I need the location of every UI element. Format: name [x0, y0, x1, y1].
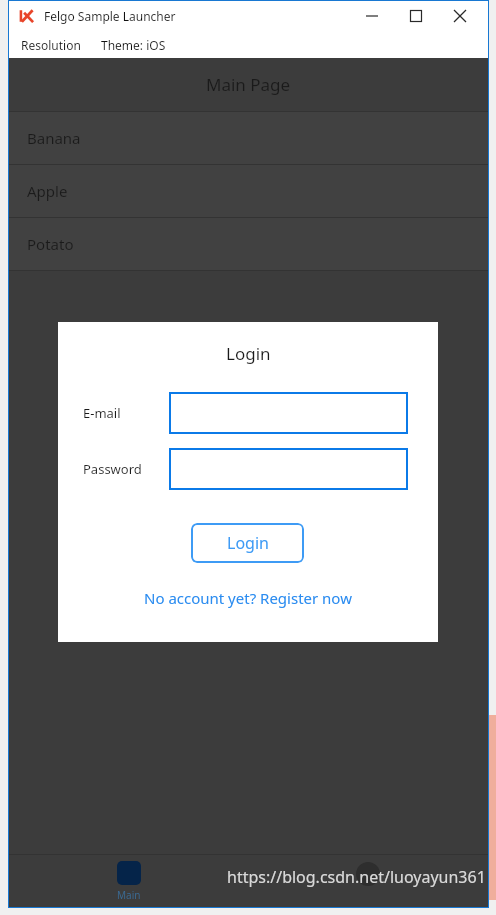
button[interactable]: Banana [9, 112, 488, 165]
staticText: Password [83, 460, 142, 478]
staticText: Banana [27, 128, 81, 148]
staticText: Login [226, 342, 271, 365]
button[interactable]: Maximize [394, 2, 438, 30]
staticText: Theme: iOS [101, 37, 166, 53]
staticText: Main [117, 888, 141, 902]
staticText: Felgo Sample Launcher [44, 8, 176, 24]
button[interactable]: Password input [169, 448, 408, 490]
staticText: Main Page [206, 73, 291, 96]
button[interactable]: Login [191, 523, 304, 563]
staticText: Potato [27, 234, 74, 254]
staticText: Apple [27, 181, 68, 201]
staticText: Login [227, 532, 269, 554]
button[interactable]: Main [9, 855, 248, 907]
button[interactable]: Minimize [350, 2, 394, 30]
staticText: https://blog.csdn.net/luoyayun361 [227, 866, 486, 888]
button[interactable]: Close [438, 2, 482, 30]
staticText: No account yet? Register now [144, 588, 352, 608]
button[interactable]: E-mail input [169, 392, 408, 434]
button[interactable]: No account yet? Register now [140, 586, 356, 610]
staticText: E-mail [83, 404, 121, 422]
button[interactable]: Theme: iOS [99, 34, 168, 56]
button[interactable]: Resolution [19, 34, 83, 56]
button[interactable]: Second tab [248, 855, 488, 907]
staticText: Resolution [21, 37, 81, 53]
